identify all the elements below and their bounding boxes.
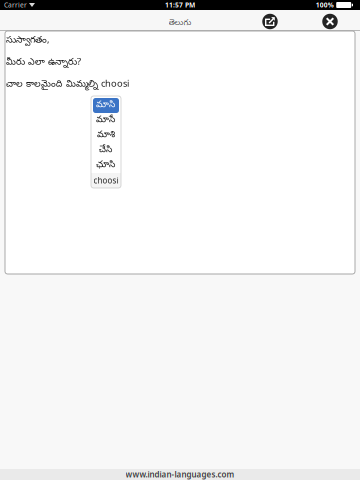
staticText: సుస్వాగతం, — [6, 33, 50, 47]
staticText: choosi — [93, 175, 118, 186]
button[interactable]: మాసి — [93, 98, 119, 113]
button[interactable]: choosi — [93, 173, 119, 188]
staticText: మాశి — [97, 129, 115, 142]
staticText: 11:57 PM — [165, 0, 195, 10]
staticText: మీరు ఎలా ఉన్నారు? — [6, 55, 81, 69]
button[interactable]: చేసి — [93, 143, 119, 158]
button[interactable]: మాశి — [93, 128, 119, 143]
button[interactable]: మాసే — [93, 113, 119, 128]
staticText: తెలుగు — [168, 18, 191, 29]
staticText: www.indian-languages.com — [125, 469, 234, 480]
staticText: చాల కాలమైంది మిమ్మల్ని choosi — [6, 77, 129, 91]
staticText: Carrier — [4, 1, 27, 9]
staticText: మాసి — [96, 99, 116, 112]
button[interactable]: Close — [319, 10, 341, 30]
button[interactable]: Share — [259, 10, 281, 30]
button[interactable]: సుస్వాగతం, — [5, 31, 355, 274]
staticText: మాసే — [96, 114, 116, 127]
staticText: 100% — [316, 0, 334, 10]
staticText: ఛూసి — [96, 159, 116, 172]
button[interactable]: ఛూసి — [93, 158, 119, 173]
staticText: చేసి — [99, 144, 113, 157]
